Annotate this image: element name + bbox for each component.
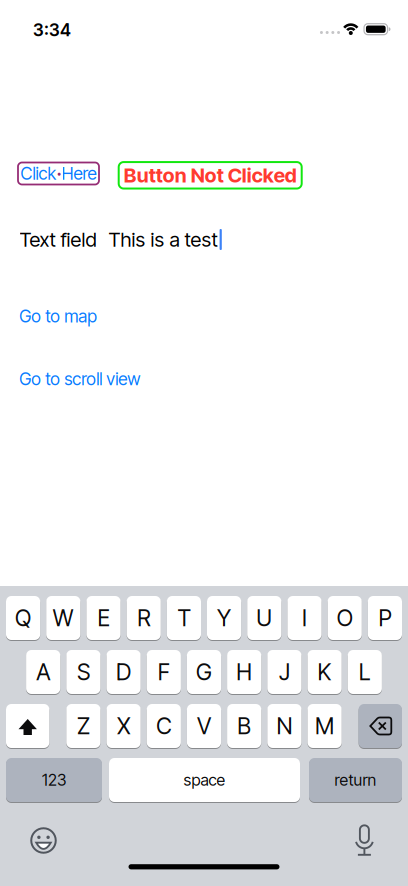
button[interactable]: S — [66, 649, 100, 695]
button[interactable]: D — [106, 649, 141, 695]
button[interactable]: N — [267, 703, 301, 749]
button[interactable]: F — [147, 649, 181, 695]
button[interactable]: P — [368, 595, 402, 641]
staticText: J — [279, 659, 290, 685]
staticText: E — [97, 605, 109, 631]
button[interactable]: Z — [66, 703, 100, 749]
button[interactable]: W — [46, 595, 80, 641]
button[interactable]: I — [287, 595, 322, 641]
staticText: N — [276, 713, 292, 739]
staticText: Go to map — [19, 306, 97, 326]
button[interactable]: B — [227, 703, 261, 749]
button[interactable]: M — [307, 703, 342, 749]
staticText: H — [236, 659, 252, 685]
button[interactable]: Dictate — [342, 818, 386, 862]
staticText: Go to scroll view — [19, 369, 140, 389]
staticText: Here — [61, 163, 96, 184]
button[interactable]: Shift — [6, 703, 49, 749]
button[interactable]: Q — [6, 595, 40, 641]
staticText: L — [359, 659, 371, 685]
button[interactable]: space — [109, 757, 300, 803]
button[interactable]: R — [127, 595, 161, 641]
staticText: 3:34 — [33, 20, 71, 40]
staticText: D — [116, 659, 131, 685]
staticText: O — [337, 605, 353, 631]
button[interactable]: 123 — [6, 757, 102, 803]
button[interactable]: U — [247, 595, 281, 641]
button[interactable]: T — [167, 595, 201, 641]
button[interactable]: Delete — [359, 703, 402, 749]
button[interactable]: Go to map — [19, 306, 97, 326]
staticText: V — [197, 713, 211, 739]
staticText: return — [334, 771, 376, 789]
staticText: X — [117, 713, 130, 739]
staticText: This is a test — [109, 228, 218, 251]
button[interactable]: E — [86, 595, 121, 641]
staticText: F — [158, 659, 170, 685]
button[interactable]: Y — [207, 595, 241, 641]
button[interactable]: O — [328, 595, 362, 641]
button[interactable]: Click — [18, 162, 99, 184]
staticText: I — [302, 605, 307, 631]
staticText: space — [183, 771, 225, 789]
button[interactable]: L — [348, 649, 382, 695]
staticText: Button Not Clicked — [124, 163, 297, 187]
staticText: B — [237, 713, 251, 739]
staticText: 123 — [42, 771, 66, 789]
staticText: A — [36, 659, 50, 685]
staticText: G — [196, 659, 212, 685]
staticText: Y — [217, 605, 231, 631]
button[interactable]: A — [26, 649, 60, 695]
button[interactable]: Go to scroll view — [19, 369, 140, 389]
staticText: K — [318, 659, 332, 685]
staticText: U — [256, 605, 272, 631]
staticText: P — [378, 605, 391, 631]
staticText: · — [56, 163, 61, 184]
button[interactable]: K — [307, 649, 342, 695]
staticText: Click — [20, 163, 56, 184]
staticText: Z — [77, 713, 90, 739]
button[interactable]: H — [227, 649, 261, 695]
button[interactable]: V — [187, 703, 221, 749]
staticText: Q — [15, 605, 31, 631]
button[interactable]: return — [309, 757, 402, 803]
staticText: C — [156, 713, 171, 739]
staticText: W — [53, 605, 74, 631]
button[interactable]: J — [267, 649, 301, 695]
staticText: T — [177, 605, 190, 631]
button[interactable]: Emoji — [21, 818, 65, 862]
button[interactable]: C — [147, 703, 181, 749]
staticText: R — [137, 605, 150, 631]
button[interactable]: G — [187, 649, 221, 695]
staticText: M — [315, 713, 334, 739]
button[interactable]: X — [106, 703, 141, 749]
staticText: S — [77, 659, 90, 685]
staticText: Text field — [20, 228, 97, 251]
